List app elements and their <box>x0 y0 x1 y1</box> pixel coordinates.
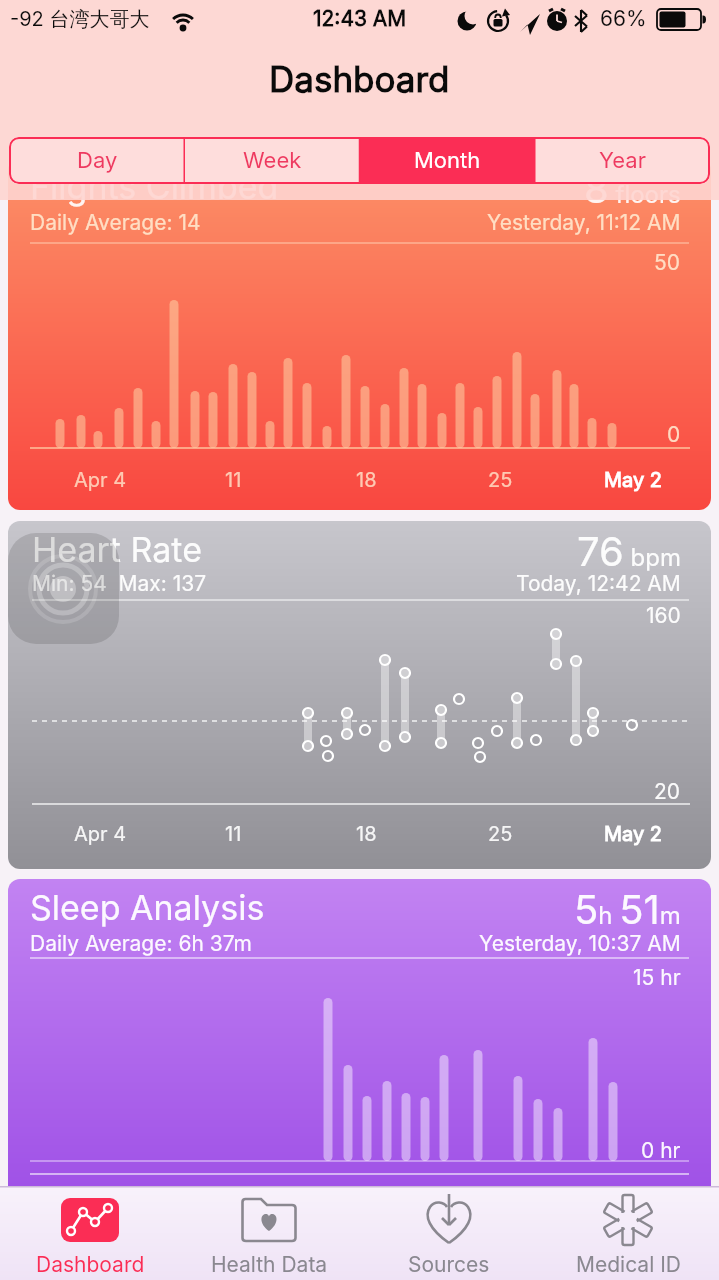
staticText: 12:43 AM <box>313 6 407 31</box>
staticText: -92 台湾大哥大 <box>10 7 150 32</box>
staticText: 0 <box>667 422 681 447</box>
staticText: 76 bpm <box>577 527 681 575</box>
button[interactable]: Heart Rate <box>8 521 711 869</box>
staticText: Medical ID <box>576 1252 681 1277</box>
button[interactable]: Sources <box>364 1194 534 1280</box>
staticText: Year <box>599 147 646 174</box>
button[interactable]: Sleep Analysis <box>8 879 711 1230</box>
staticText: Dashboard <box>269 58 450 100</box>
button[interactable]: Year <box>535 137 710 184</box>
staticText: Sources <box>408 1252 490 1277</box>
staticText: Day <box>77 147 118 174</box>
button[interactable]: Month <box>360 137 535 184</box>
staticText: Yesterday, 10:37 AM <box>479 931 681 956</box>
staticText: Today, 12:42 AM <box>516 571 681 596</box>
staticText: 11 <box>225 822 242 846</box>
staticText: 160 <box>646 603 681 628</box>
staticText: Min: 54 Max: 137 <box>32 571 207 596</box>
staticText: Apr 4 <box>74 822 127 846</box>
staticText: Week <box>243 147 302 174</box>
staticText: Apr 4 <box>74 468 127 492</box>
staticText: 5h 51m <box>574 885 681 933</box>
staticText: Health Data <box>211 1252 328 1277</box>
staticText: 25 <box>488 468 513 492</box>
staticText: Daily Average: 14 <box>30 210 201 235</box>
staticText: May 2 <box>604 822 663 846</box>
staticText: 18 <box>356 822 377 846</box>
staticText: 18 <box>356 468 377 492</box>
staticText: 25 <box>488 822 513 846</box>
staticText: 8 floors <box>584 164 681 212</box>
button[interactable]: Health Data <box>184 1194 354 1280</box>
staticText: 66% <box>600 6 647 31</box>
button[interactable]: Week <box>185 137 360 184</box>
staticText: 50 <box>654 250 681 275</box>
staticText: Flights Climbed <box>30 166 279 207</box>
staticText: 11 <box>225 468 242 492</box>
staticText: Sleep Analysis <box>30 887 265 928</box>
button[interactable]: Medical ID <box>543 1194 713 1280</box>
staticText: 20 <box>654 779 681 804</box>
staticText: Daily Average: 6h 37m <box>30 931 252 956</box>
staticText: Dashboard <box>36 1252 145 1277</box>
button[interactable]: Dashboard <box>5 1194 175 1280</box>
staticText: 15 hr <box>633 965 681 990</box>
staticText: Yesterday, 11:12 AM <box>487 210 681 235</box>
button[interactable]: Flights Climbed <box>8 158 711 510</box>
staticText: May 2 <box>604 468 663 492</box>
button[interactable]: Day <box>9 137 185 184</box>
staticText: Month <box>414 147 481 174</box>
staticText: Heart Rate <box>32 529 202 570</box>
staticText: 0 hr <box>641 1138 681 1163</box>
